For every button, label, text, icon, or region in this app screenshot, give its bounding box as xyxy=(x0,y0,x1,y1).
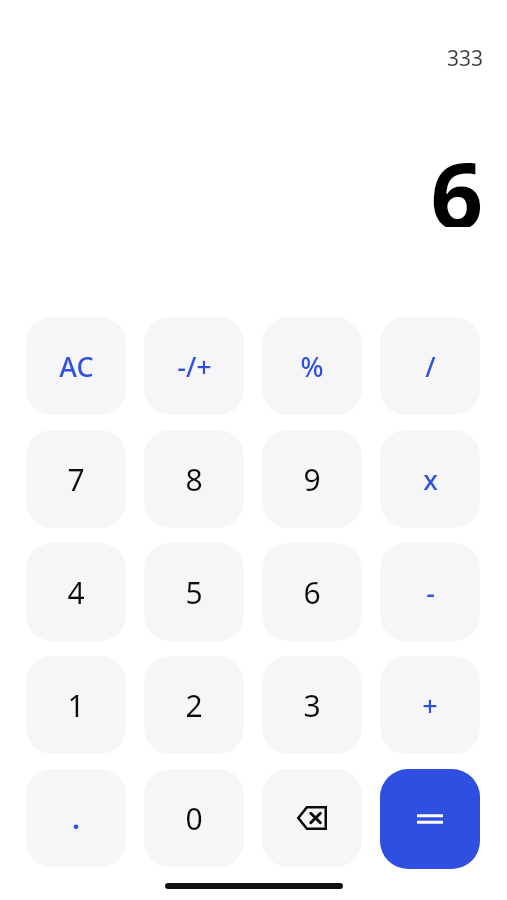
staticText: AC xyxy=(59,348,94,385)
button[interactable]: Equals xyxy=(380,769,480,869)
button[interactable]: x xyxy=(380,430,480,528)
staticText: 7 xyxy=(67,459,85,500)
button[interactable]: 1 xyxy=(26,656,126,754)
button[interactable]: - xyxy=(380,543,480,641)
staticText: 3 xyxy=(303,685,321,726)
button[interactable]: Backspace xyxy=(262,769,362,867)
staticText: -/+ xyxy=(177,348,212,385)
button[interactable]: 8 xyxy=(144,430,244,528)
button[interactable]: 7 xyxy=(26,430,126,528)
button[interactable]: + xyxy=(380,656,480,754)
staticText: 6 xyxy=(430,131,483,227)
staticText: 9 xyxy=(303,459,321,500)
staticText: 2 xyxy=(185,685,203,726)
staticText: 333 xyxy=(446,44,483,73)
button[interactable]: 9 xyxy=(262,430,362,528)
staticText: % xyxy=(300,348,324,385)
staticText: 5 xyxy=(185,572,203,613)
staticText: x xyxy=(423,461,438,498)
button[interactable]: . xyxy=(26,769,126,867)
button[interactable]: 4 xyxy=(26,543,126,641)
button[interactable]: 5 xyxy=(144,543,244,641)
button[interactable]: -/+ xyxy=(144,317,244,415)
button[interactable]: AC xyxy=(26,317,126,415)
button[interactable]: % xyxy=(262,317,362,415)
staticText: 4 xyxy=(67,572,85,613)
button[interactable]: 2 xyxy=(144,656,244,754)
staticText: 1 xyxy=(67,685,85,726)
staticText: - xyxy=(426,574,435,611)
button[interactable]: 0 xyxy=(144,769,244,867)
button[interactable]: / xyxy=(380,317,480,415)
staticText: 8 xyxy=(185,459,203,500)
staticText: 0 xyxy=(185,798,203,839)
staticText: / xyxy=(425,348,436,385)
staticText: 6 xyxy=(303,572,321,613)
button[interactable]: 3 xyxy=(262,656,362,754)
button[interactable]: 6 xyxy=(262,543,362,641)
staticText: + xyxy=(422,687,438,724)
staticText: . xyxy=(72,800,80,837)
